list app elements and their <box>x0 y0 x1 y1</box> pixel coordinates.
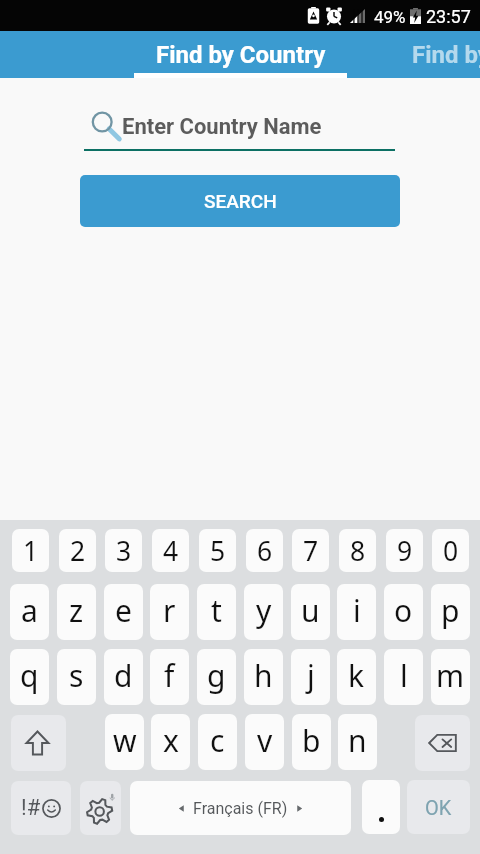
staticText: m <box>436 655 465 696</box>
button[interactable]: OK <box>407 780 470 834</box>
button[interactable]: 7 <box>292 529 329 572</box>
button[interactable]: q <box>10 649 49 705</box>
staticText: 4 <box>163 533 179 569</box>
button[interactable]: Settings <box>80 781 121 835</box>
button[interactable]: 0 <box>432 529 469 572</box>
button[interactable]: Français (FR) <box>130 781 351 835</box>
button[interactable]: Shift <box>11 715 66 771</box>
staticText: s <box>69 655 84 696</box>
staticText: o <box>394 590 413 631</box>
staticText: h <box>254 655 273 696</box>
button[interactable]: 1 <box>12 529 49 572</box>
staticText: d <box>114 655 133 696</box>
button[interactable]: 8 <box>339 529 376 572</box>
button[interactable]: Enter Country Name <box>84 106 395 151</box>
staticText: 6 <box>257 533 273 569</box>
button[interactable]: Backspace <box>415 715 470 771</box>
button[interactable]: o <box>384 584 423 640</box>
staticText: 1 <box>23 533 39 569</box>
staticText: c <box>210 720 225 761</box>
staticText: l <box>400 655 408 696</box>
button[interactable]: Find by Country <box>134 31 347 78</box>
staticText: t <box>211 590 222 631</box>
staticText: f <box>164 655 175 696</box>
staticText: w <box>113 720 137 761</box>
staticText: j <box>307 655 315 696</box>
staticText: i <box>353 590 361 631</box>
staticText: 0 <box>443 533 459 569</box>
button[interactable]: 6 <box>246 529 283 572</box>
button[interactable]: w <box>105 714 144 770</box>
staticText: k <box>348 655 365 696</box>
button[interactable]: c <box>198 714 237 770</box>
staticText: g <box>207 655 226 696</box>
staticText: r <box>163 590 176 631</box>
staticText: SEARCH <box>204 190 277 212</box>
staticText: Français (FR) <box>193 799 288 818</box>
button[interactable]: l <box>384 649 423 705</box>
button[interactable]: 2 <box>59 529 96 572</box>
staticText: y <box>256 590 272 631</box>
staticText: !# <box>21 795 41 821</box>
staticText: z <box>69 590 84 631</box>
button[interactable]: h <box>244 649 283 705</box>
staticText: n <box>348 720 367 761</box>
staticText: 23:57 <box>426 6 471 27</box>
staticText: u <box>301 590 320 631</box>
button[interactable]: 5 <box>199 529 236 572</box>
staticText: 5 <box>210 533 226 569</box>
staticText: 7 <box>303 533 319 569</box>
button[interactable]: i <box>337 584 376 640</box>
button[interactable]: u <box>291 584 330 640</box>
button[interactable]: j <box>291 649 330 705</box>
staticText: 49% <box>374 7 406 27</box>
staticText: 8 <box>350 533 366 569</box>
staticText: 2 <box>70 533 86 569</box>
staticText: x <box>163 720 179 761</box>
button[interactable]: b <box>292 714 331 770</box>
button[interactable]: 9 <box>386 529 423 572</box>
staticText: OK <box>425 796 452 819</box>
button[interactable]: x <box>151 714 190 770</box>
button[interactable]: y <box>244 584 283 640</box>
button[interactable]: Period <box>362 780 400 834</box>
button[interactable]: r <box>150 584 189 640</box>
staticText: b <box>302 720 321 761</box>
staticText: v <box>257 720 273 761</box>
button[interactable]: z <box>57 584 96 640</box>
button[interactable]: 3 <box>105 529 142 572</box>
button[interactable]: f <box>150 649 189 705</box>
staticText: e <box>115 590 132 631</box>
staticText: 3 <box>116 533 132 569</box>
button[interactable]: m <box>431 649 470 705</box>
staticText: 9 <box>397 533 413 569</box>
button[interactable]: a <box>10 584 49 640</box>
button[interactable]: n <box>338 714 377 770</box>
button[interactable]: SEARCH <box>80 175 400 227</box>
button[interactable]: t <box>197 584 236 640</box>
staticText: Find by Country <box>156 41 326 69</box>
staticText: q <box>20 655 39 696</box>
staticText: Find by Capital <box>412 41 480 69</box>
button[interactable]: e <box>104 584 143 640</box>
button[interactable]: p <box>431 584 470 640</box>
button[interactable]: d <box>104 649 143 705</box>
button[interactable]: k <box>337 649 376 705</box>
button[interactable]: 4 <box>152 529 189 572</box>
button[interactable]: g <box>197 649 236 705</box>
staticText: p <box>441 590 460 631</box>
button[interactable]: v <box>245 714 284 770</box>
button[interactable]: Find by Capital <box>370 31 480 78</box>
button[interactable]: Symbols and emoji <box>11 781 71 835</box>
button[interactable]: s <box>57 649 96 705</box>
staticText: Enter Country Name <box>122 114 322 140</box>
staticText: a <box>21 590 38 631</box>
